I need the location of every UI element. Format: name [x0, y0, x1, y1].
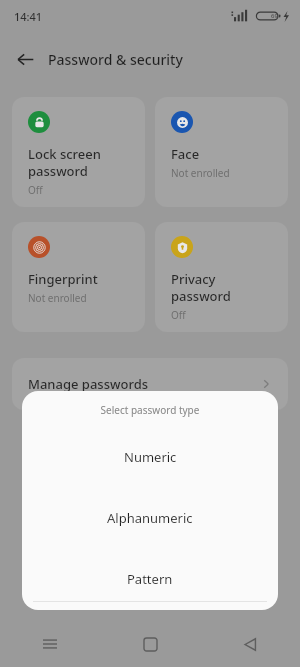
- staticText: Lock screen password: [28, 145, 101, 180]
- button[interactable]: Lock screen password: [12, 97, 145, 207]
- staticText: Face: [171, 145, 200, 163]
- button[interactable]: Face: [155, 97, 288, 207]
- staticText: 69: [271, 12, 278, 20]
- staticText: Password & security: [48, 50, 183, 69]
- button[interactable]: Back: [200, 621, 300, 667]
- button[interactable]: Home: [100, 621, 200, 667]
- staticText: Pattern: [127, 570, 173, 588]
- staticText: Privacy password: [171, 270, 231, 305]
- button[interactable]: Back: [10, 44, 40, 74]
- staticText: Off: [171, 308, 186, 322]
- button[interactable]: Alphanumeric: [22, 466, 278, 527]
- button[interactable]: Cancel: [22, 602, 278, 610]
- staticText: Manage passwords: [28, 375, 260, 393]
- staticText: 14:41: [14, 9, 43, 24]
- staticText: Alphanumeric: [107, 509, 193, 527]
- button[interactable]: Privacy password: [155, 222, 288, 332]
- staticText: Fingerprint: [28, 270, 98, 288]
- button[interactable]: Numeric: [22, 417, 278, 466]
- button[interactable]: Manage passwords: [12, 358, 288, 410]
- staticText: Off: [28, 183, 43, 197]
- button[interactable]: Pattern: [22, 527, 278, 588]
- button[interactable]: Fingerprint: [12, 222, 145, 332]
- staticText: Select password type: [22, 403, 278, 417]
- staticText: Numeric: [124, 448, 177, 466]
- button[interactable]: Recents: [0, 621, 100, 667]
- staticText: Not enrolled: [28, 291, 87, 305]
- staticText: Not enrolled: [171, 166, 230, 180]
